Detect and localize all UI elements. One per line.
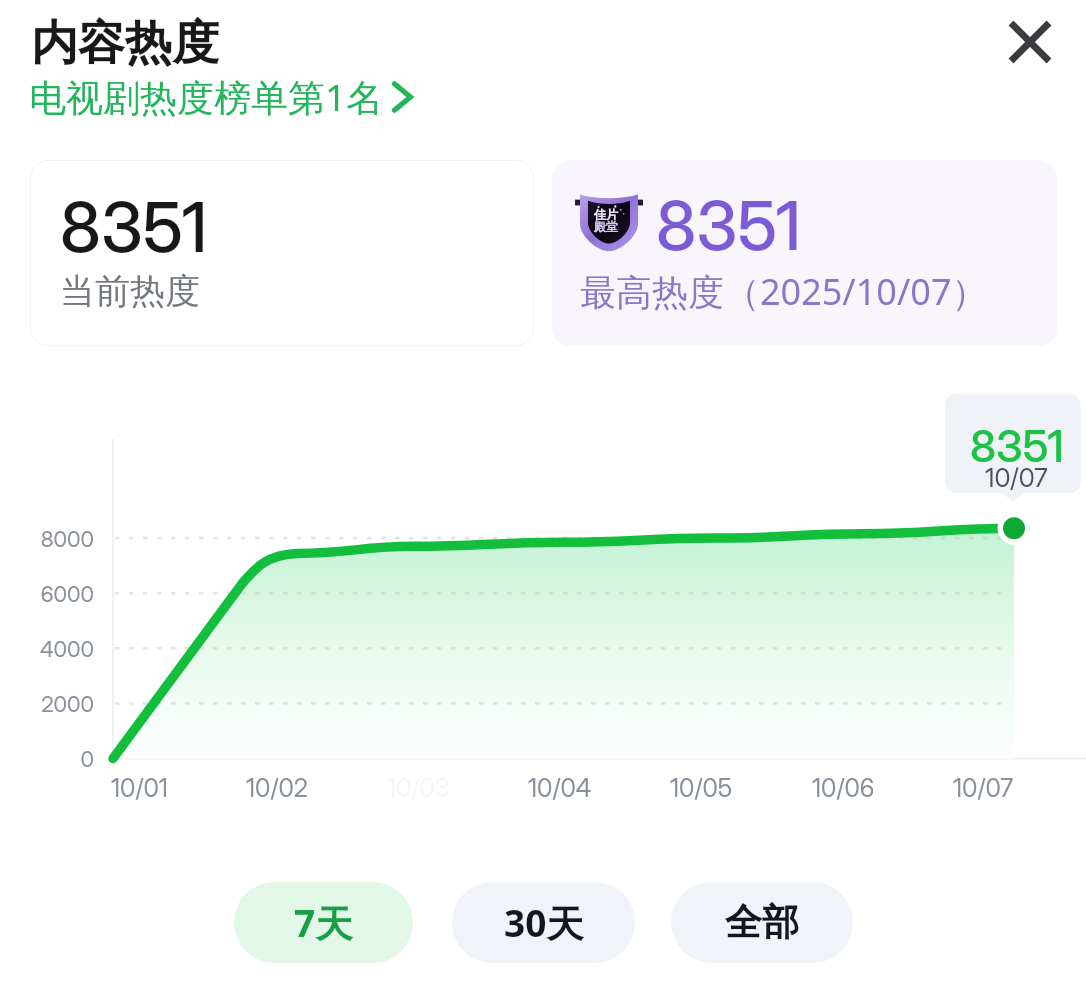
staticText: 6000 (0, 581, 94, 608)
staticText: 10/02 (246, 773, 308, 803)
button[interactable]: 佳片 (552, 160, 1057, 346)
staticText: 10/04 (528, 773, 592, 803)
staticText: 电视剧热度榜单第1名 (29, 71, 384, 122)
button[interactable]: 全部 (671, 882, 853, 963)
staticText: 10/07 (985, 462, 1048, 493)
staticText: 当前热度 (60, 269, 200, 313)
staticText: 0 (0, 746, 94, 773)
staticText: 10/06 (812, 773, 875, 803)
staticText: 2000 (0, 691, 94, 718)
staticText: 8351 (970, 419, 1064, 472)
staticText: 4000 (0, 636, 94, 663)
staticText: 8351 (656, 184, 802, 266)
button[interactable]: 7天 (234, 882, 413, 963)
staticText: 7天 (294, 897, 353, 948)
staticText: 10/03 (387, 773, 450, 803)
staticText: 8351 (60, 185, 208, 268)
button[interactable]: 电视剧热度榜单第1名 (29, 71, 412, 122)
staticText: 10/01 (111, 773, 168, 803)
staticText: 10/07 (953, 773, 1014, 803)
staticText: 10/05 (670, 773, 733, 803)
staticText: 殿堂 (594, 219, 618, 234)
button[interactable]: 8351 (30, 160, 534, 346)
button[interactable]: 30天 (452, 882, 635, 963)
staticText: 30天 (504, 897, 584, 948)
staticText: 内容热度 (31, 14, 219, 73)
staticText: 最高热度（2025/10/07） (580, 267, 988, 316)
staticText: 全部 (725, 899, 799, 946)
staticText: 8000 (0, 526, 94, 553)
button[interactable]: Close (994, 6, 1066, 78)
staticText: 佳片 (594, 207, 618, 222)
